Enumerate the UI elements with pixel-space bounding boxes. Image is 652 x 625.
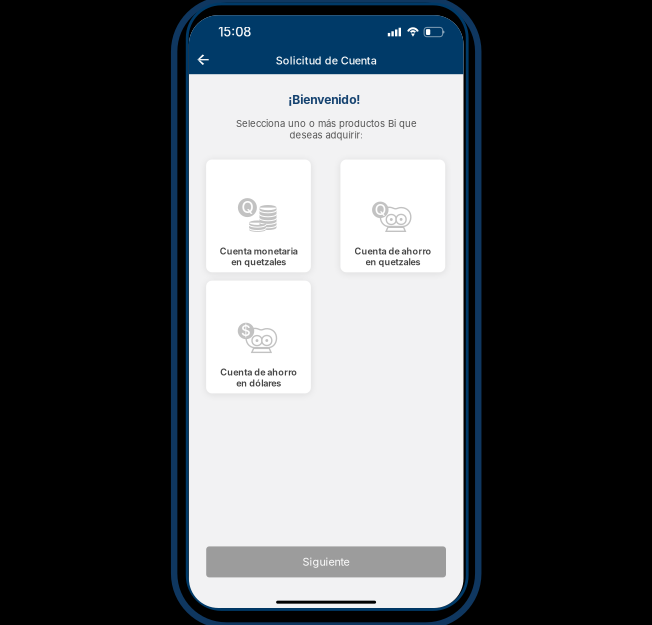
staticText: 15:08 xyxy=(218,24,251,40)
button[interactable]: Siguiente xyxy=(206,546,446,577)
staticText: Cuenta de ahorro en quetzales xyxy=(354,246,431,267)
staticText: Solicitud de Cuenta xyxy=(276,54,377,67)
staticText: Siguiente xyxy=(303,555,350,568)
button[interactable]: Back xyxy=(189,47,218,73)
staticText: Cuenta monetaria en quetzales xyxy=(219,246,297,267)
staticText: Q xyxy=(375,200,386,219)
staticText: $ xyxy=(241,322,251,340)
staticText: Q xyxy=(241,198,253,217)
staticText: Selecciona uno o más productos Bi que de… xyxy=(236,118,417,141)
button[interactable]: Q xyxy=(340,159,445,272)
button[interactable]: Q xyxy=(206,159,311,272)
staticText: Cuenta de ahorro en dólares xyxy=(220,367,297,389)
staticText: ¡Bienvenido! xyxy=(288,92,360,107)
button[interactable]: $ xyxy=(206,281,311,393)
